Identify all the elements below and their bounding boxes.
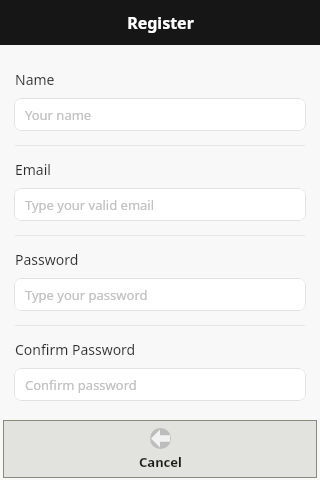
staticText: Type your valid email	[25, 196, 155, 214]
button[interactable]: Type your valid email	[14, 188, 306, 221]
staticText: Type your password	[25, 286, 148, 304]
staticText: Register	[127, 12, 194, 34]
staticText: Your name	[25, 106, 92, 124]
staticText: Confirm password	[25, 376, 137, 394]
staticText: Confirm Password	[15, 340, 136, 359]
staticText: Email	[15, 160, 51, 179]
button[interactable]: Confirm password	[14, 368, 306, 401]
staticText: Name	[15, 70, 55, 89]
staticText: Cancel	[139, 453, 182, 471]
button[interactable]: Type your password	[14, 278, 306, 311]
button[interactable]: Cancel	[3, 420, 317, 478]
button[interactable]: Your name	[14, 98, 306, 131]
staticText: Password	[15, 250, 79, 269]
